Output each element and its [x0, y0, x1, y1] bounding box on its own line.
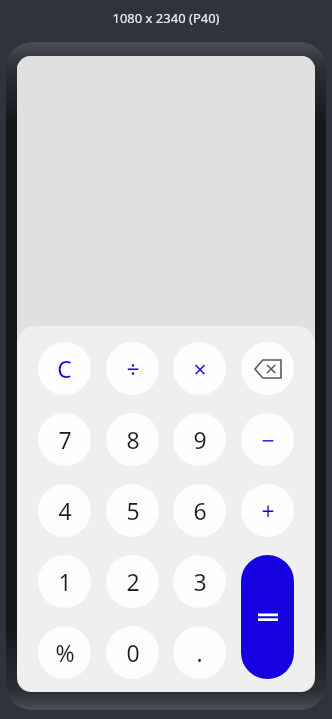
button[interactable]: ÷	[106, 342, 159, 395]
button[interactable]: 7	[38, 413, 91, 466]
staticText: ×	[193, 353, 207, 384]
staticText: 1	[58, 566, 72, 597]
button[interactable]: 3	[173, 555, 226, 608]
button[interactable]: 1	[38, 555, 91, 608]
staticText: ÷	[126, 353, 140, 384]
staticText: 4	[58, 495, 72, 526]
button[interactable]: 4	[38, 484, 91, 537]
button[interactable]: %	[38, 626, 91, 679]
button[interactable]: 2	[106, 555, 159, 608]
button[interactable]: C	[38, 342, 91, 395]
staticText: .	[196, 637, 203, 668]
button[interactable]	[17, 56, 315, 326]
button[interactable]: ×	[173, 342, 226, 395]
staticText: 7	[58, 424, 72, 455]
staticText: 8	[126, 424, 140, 455]
button[interactable]: 6	[173, 484, 226, 537]
button[interactable]: 8	[106, 413, 159, 466]
staticText: −	[261, 424, 275, 455]
button[interactable]	[241, 555, 294, 679]
button[interactable]: +	[241, 484, 294, 537]
button[interactable]: Backspace	[241, 342, 294, 395]
button[interactable]: 9	[173, 413, 226, 466]
staticText: 9	[193, 424, 207, 455]
button[interactable]: −	[241, 413, 294, 466]
button[interactable]: 5	[106, 484, 159, 537]
staticText: 5	[126, 495, 140, 526]
staticText: 0	[126, 637, 140, 668]
staticText: +	[261, 495, 275, 526]
button[interactable]: .	[173, 626, 226, 679]
staticText: 6	[193, 495, 207, 526]
staticText: 3	[193, 566, 207, 597]
staticText: C	[57, 353, 72, 384]
button[interactable]: 0	[106, 626, 159, 679]
staticText: %	[55, 637, 75, 668]
staticText: 1080 x 2340 (P40)	[112, 9, 220, 27]
staticText: 2	[126, 566, 140, 597]
